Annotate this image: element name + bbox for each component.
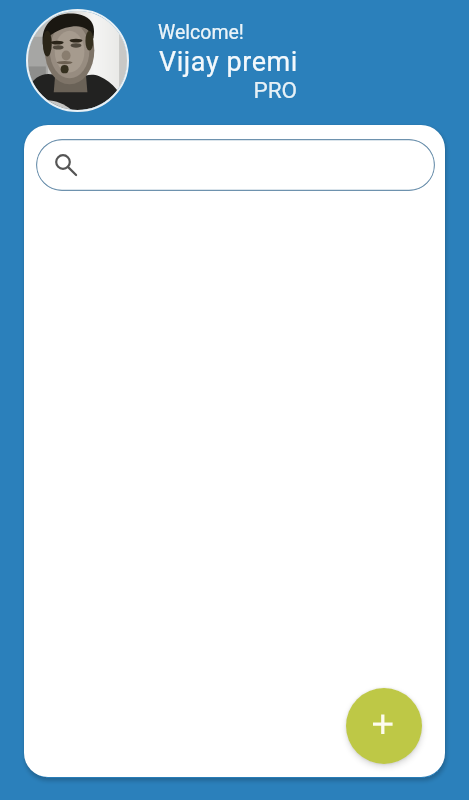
staticText: Vijay premi	[159, 46, 298, 78]
button[interactable]: Add	[346, 688, 422, 764]
staticText: Welcome!	[158, 21, 244, 44]
button[interactable]	[36, 139, 435, 191]
staticText: PRO	[158, 77, 297, 103]
button[interactable]: Profile photo	[26, 9, 129, 112]
